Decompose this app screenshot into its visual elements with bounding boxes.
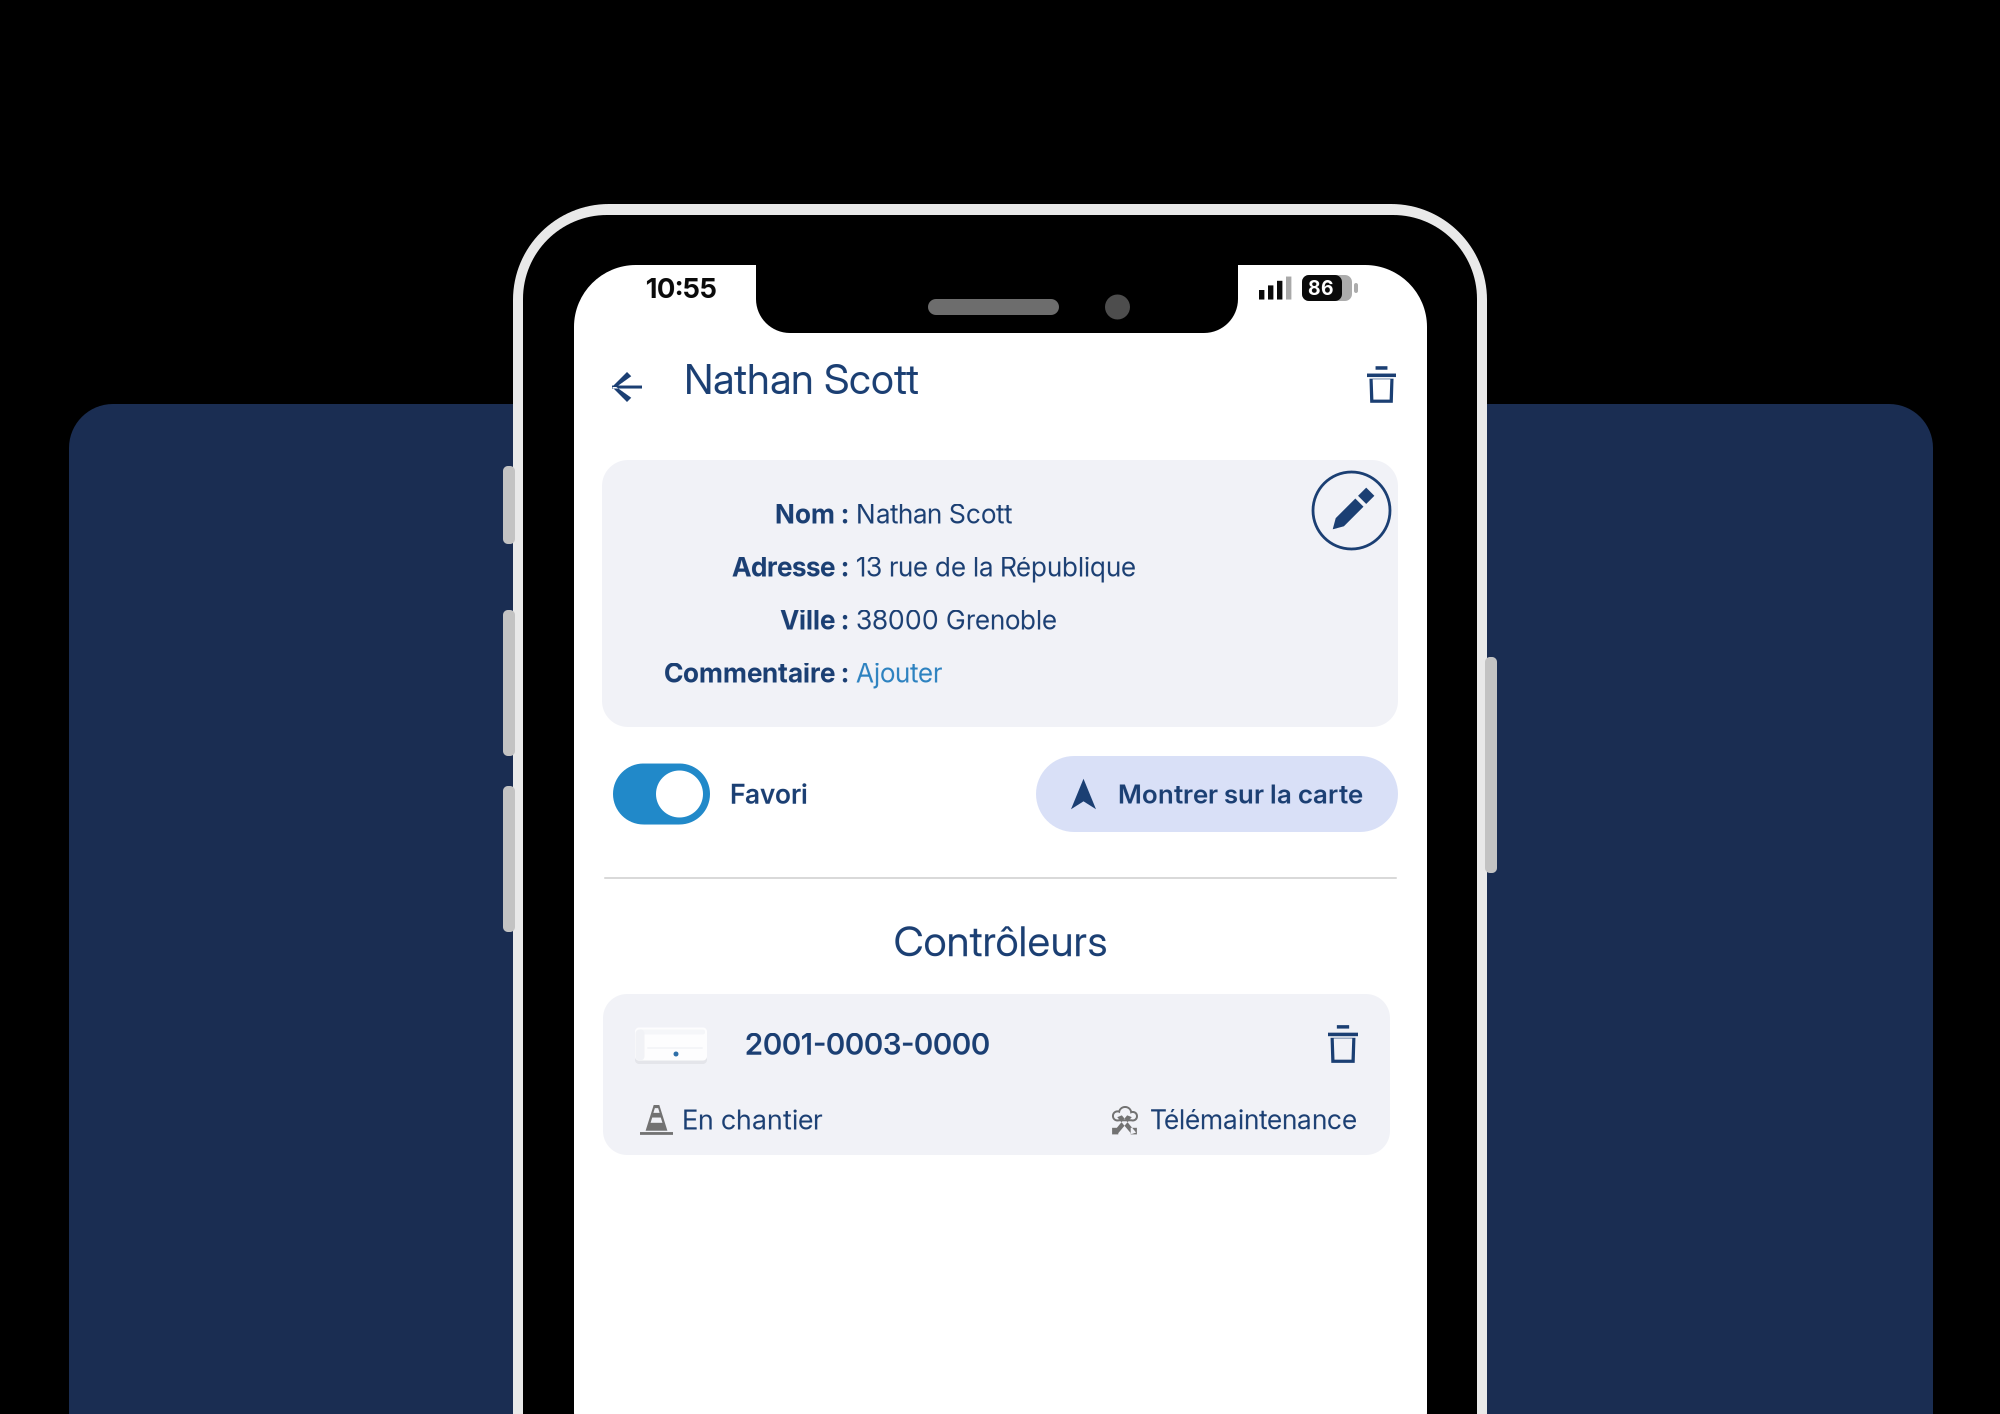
button[interactable]: Back <box>574 342 654 416</box>
staticText: En chantier <box>682 1103 823 1136</box>
button[interactable]: Nathan Scott <box>654 342 919 416</box>
staticText: 13 rue de la République <box>849 551 1136 583</box>
staticText: Favori <box>730 778 808 810</box>
staticText: Ajouter <box>849 657 942 689</box>
staticText: Montrer sur la carte <box>1118 778 1363 810</box>
staticText: 2001-0003-0000 <box>745 1026 990 1062</box>
staticText: 86 <box>1308 276 1334 300</box>
staticText: Ville : <box>780 604 849 636</box>
staticText: Contrôleurs <box>893 916 1107 966</box>
button[interactable]: 2001-0003-0000 <box>603 994 1390 1155</box>
staticText: 10:55 <box>646 271 717 305</box>
staticText: Nathan Scott <box>849 498 1012 530</box>
button[interactable]: Edit <box>1299 460 1398 563</box>
staticText: 38000 Grenoble <box>849 604 1057 636</box>
staticText: Nom : <box>775 498 849 530</box>
button[interactable]: Favori <box>602 756 808 832</box>
button[interactable]: Delete <box>1342 337 1415 421</box>
button[interactable]: Montrer sur la carte <box>1036 756 1398 832</box>
staticText: Commentaire : <box>664 657 849 689</box>
staticText: Adresse : <box>732 551 849 583</box>
staticText: Télémaintenance <box>1150 1103 1357 1136</box>
staticText: Nathan Scott <box>684 354 919 404</box>
